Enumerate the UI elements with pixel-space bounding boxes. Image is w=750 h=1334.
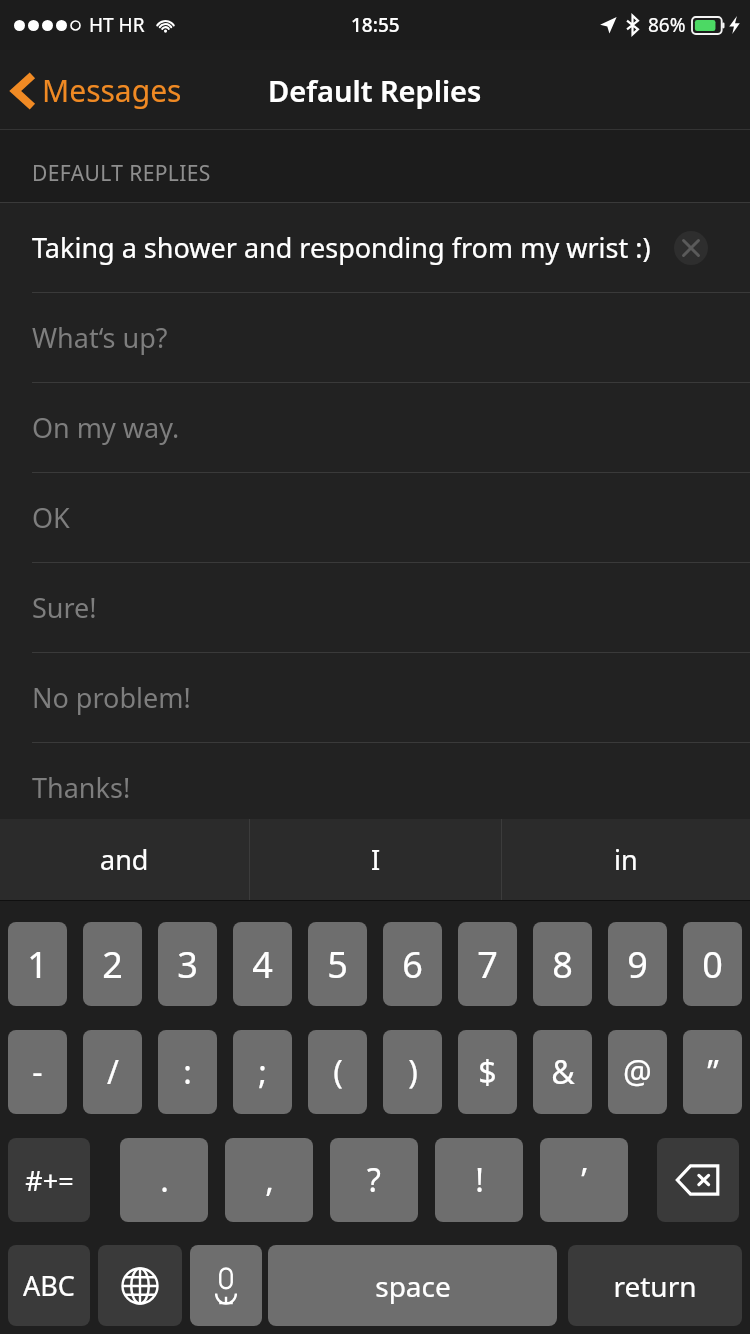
button[interactable]: $	[458, 1030, 517, 1114]
staticText: I	[371, 841, 381, 878]
button[interactable]: ABC	[8, 1245, 90, 1326]
button[interactable]: 2	[83, 922, 142, 1006]
button[interactable]: Clear text	[674, 231, 708, 265]
button[interactable]: space	[268, 1245, 557, 1326]
staticText: 0	[702, 940, 723, 989]
staticText: 8	[552, 940, 573, 989]
button[interactable]: OK	[0, 473, 750, 562]
staticText: 5	[327, 940, 348, 989]
button[interactable]: ?	[330, 1138, 418, 1222]
staticText: return	[613, 1267, 697, 1305]
button[interactable]: (	[308, 1030, 367, 1114]
button[interactable]: #+=	[8, 1138, 90, 1222]
button[interactable]: What‘s up?	[0, 293, 750, 382]
staticText: -	[32, 1050, 43, 1094]
button[interactable]: return	[568, 1245, 742, 1326]
staticText: &	[551, 1050, 575, 1094]
button[interactable]: :	[158, 1030, 217, 1114]
button[interactable]: )	[383, 1030, 442, 1114]
staticText: 1	[27, 940, 48, 989]
button[interactable]: 4	[233, 922, 292, 1006]
staticText: :	[183, 1050, 192, 1094]
staticText: Default Replies	[268, 71, 482, 110]
staticText: ”	[707, 1050, 719, 1094]
button[interactable]: .	[120, 1138, 208, 1222]
staticText: HT HR	[89, 12, 145, 38]
button[interactable]: Change keyboard language	[98, 1245, 182, 1326]
button[interactable]: 9	[608, 922, 667, 1006]
staticText: Taking a shower and responding from my w…	[32, 229, 651, 266]
staticText: ?	[367, 1158, 381, 1202]
staticText: (	[333, 1050, 343, 1094]
button[interactable]: @	[608, 1030, 667, 1114]
button[interactable]: No problem!	[0, 653, 750, 742]
button[interactable]: Thanks!	[0, 743, 750, 832]
staticText: @	[623, 1050, 652, 1094]
button[interactable]: 0	[683, 922, 742, 1006]
staticText: 4	[252, 940, 273, 989]
button[interactable]: &	[533, 1030, 592, 1114]
button[interactable]: Messages	[0, 62, 194, 119]
staticText: DEFAULT REPLIES	[32, 159, 211, 188]
staticText: On my way.	[32, 409, 180, 446]
button[interactable]: -	[8, 1030, 67, 1114]
button[interactable]: On my way.	[0, 383, 750, 472]
button[interactable]: ”	[683, 1030, 742, 1114]
staticText: and	[100, 841, 149, 878]
staticText: ,	[265, 1158, 274, 1202]
staticText: 7	[477, 940, 498, 989]
staticText: ’	[581, 1158, 587, 1202]
staticText: ABC	[23, 1267, 75, 1304]
button[interactable]: /	[83, 1030, 142, 1114]
staticText: 6	[402, 940, 423, 989]
button[interactable]: 3	[158, 922, 217, 1006]
button[interactable]: and	[0, 819, 249, 900]
staticText: What‘s up?	[32, 319, 168, 356]
button[interactable]: Taking a shower and responding from my w…	[0, 203, 750, 292]
button[interactable]: 6	[383, 922, 442, 1006]
staticText: !	[475, 1158, 484, 1202]
button[interactable]: I	[250, 819, 501, 900]
button[interactable]: ;	[233, 1030, 292, 1114]
staticText: 3	[177, 940, 198, 989]
staticText: Sure!	[32, 589, 97, 626]
staticText: /	[107, 1050, 119, 1094]
button[interactable]: 5	[308, 922, 367, 1006]
staticText: space	[375, 1267, 451, 1305]
button[interactable]: Sure!	[0, 563, 750, 652]
staticText: No problem!	[32, 679, 191, 716]
staticText: 2	[102, 940, 123, 989]
staticText: 9	[627, 940, 648, 989]
staticText: #+=	[25, 1162, 74, 1199]
staticText: Thanks!	[32, 769, 131, 806]
button[interactable]: in	[502, 819, 750, 900]
button[interactable]: Backspace	[657, 1138, 739, 1222]
staticText: $	[478, 1050, 497, 1094]
staticText: ;	[258, 1050, 267, 1094]
button[interactable]: ,	[225, 1138, 313, 1222]
staticText: in	[614, 841, 638, 878]
button[interactable]: 8	[533, 922, 592, 1006]
staticText: .	[160, 1158, 169, 1202]
button[interactable]: ’	[540, 1138, 628, 1222]
button[interactable]: Dictation	[190, 1245, 262, 1326]
staticText: 18:55	[351, 12, 400, 38]
button[interactable]: 1	[8, 922, 67, 1006]
button[interactable]: 7	[458, 922, 517, 1006]
button[interactable]: !	[435, 1138, 523, 1222]
staticText: Messages	[42, 70, 182, 111]
staticText: 86%	[648, 12, 686, 38]
staticText: )	[408, 1050, 418, 1094]
staticText: OK	[32, 499, 70, 536]
